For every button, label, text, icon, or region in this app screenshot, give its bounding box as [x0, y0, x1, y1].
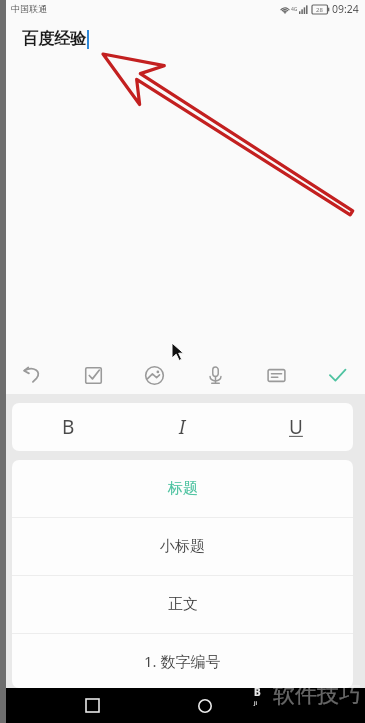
button[interactable]: Undo	[10, 357, 54, 393]
button[interactable]: U	[239, 403, 353, 451]
staticText: B	[254, 685, 261, 699]
button[interactable]: Recents	[70, 688, 114, 723]
staticText: 4G	[291, 6, 298, 13]
button[interactable]: B	[12, 403, 125, 451]
staticText: B	[62, 414, 75, 440]
staticText: ji	[254, 699, 258, 707]
button[interactable]: 正文	[12, 576, 353, 633]
staticText: U	[289, 414, 303, 440]
button[interactable]: I	[125, 403, 239, 451]
button[interactable]: Insert image	[132, 357, 176, 393]
button[interactable]: 小标题	[12, 518, 353, 575]
button[interactable]: 1. 数字编号	[12, 634, 353, 688]
button[interactable]: Checklist	[71, 357, 115, 393]
staticText: 标题	[168, 479, 198, 498]
button[interactable]: 标题	[12, 460, 353, 517]
staticText: 小标题	[160, 537, 205, 556]
staticText: 正文	[168, 595, 198, 614]
staticText: 1. 数字编号	[144, 651, 221, 671]
button[interactable]: Home	[183, 688, 227, 723]
button[interactable]: Voice input	[193, 357, 237, 393]
staticText: I	[179, 414, 186, 440]
staticText: 软件技巧	[273, 681, 361, 709]
staticText: 09:24	[332, 2, 359, 16]
staticText: 百度经验	[22, 29, 86, 49]
button[interactable]: Done	[315, 357, 359, 393]
staticText: 中国联通	[11, 3, 47, 14]
button[interactable]: Text format	[254, 357, 298, 393]
staticText: 28	[316, 6, 323, 14]
